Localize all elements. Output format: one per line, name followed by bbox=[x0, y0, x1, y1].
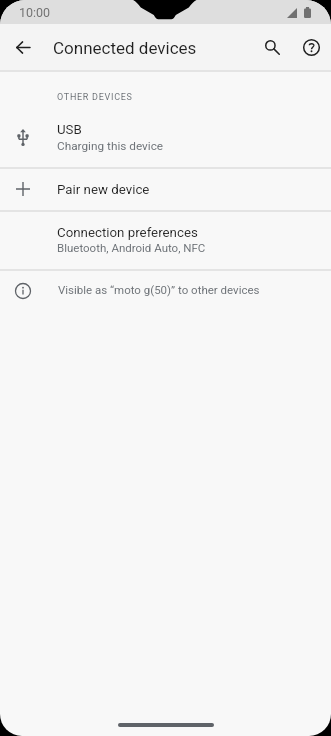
staticText: Connected devices bbox=[53, 38, 197, 58]
staticText: Bluetooth, Android Auto, NFC bbox=[57, 241, 206, 254]
staticText: Charging this device bbox=[57, 139, 164, 153]
staticText: USB bbox=[57, 122, 82, 138]
button[interactable]: Back bbox=[16, 41, 30, 54]
staticText: OTHER DEVICES bbox=[57, 92, 133, 103]
button[interactable]: Search bbox=[265, 40, 280, 55]
staticText: 10:00 bbox=[19, 5, 51, 20]
button[interactable]: Help bbox=[303, 39, 320, 56]
staticText: Pair new device bbox=[57, 182, 150, 198]
button[interactable]: Connection preferences bbox=[0, 211, 331, 269]
button[interactable]: Pair new device bbox=[0, 168, 331, 210]
staticText: Connection preferences bbox=[57, 225, 198, 241]
staticText: Visible as “moto g(50)” to other devices bbox=[58, 283, 260, 296]
button[interactable]: USB bbox=[0, 106, 331, 167]
